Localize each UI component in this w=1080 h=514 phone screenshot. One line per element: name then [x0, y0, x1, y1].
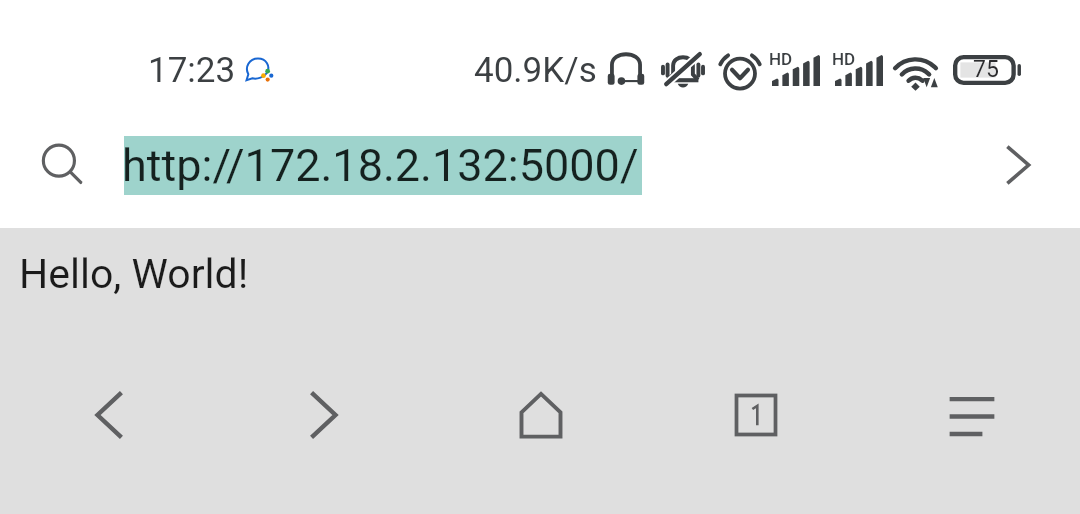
- button[interactable]: Menu: [864, 358, 1080, 472]
- button[interactable]: Home: [432, 358, 648, 472]
- staticText: 75: [973, 56, 999, 83]
- button[interactable]: Search: [40, 143, 82, 185]
- button[interactable]: Tabs: [648, 358, 864, 472]
- staticText: HD: [769, 49, 793, 69]
- button[interactable]: Back: [0, 358, 216, 472]
- button[interactable]: http://172.18.2.132:5000/: [124, 136, 642, 195]
- staticText: 40.9K/s: [474, 50, 597, 91]
- staticText: 17:23: [148, 50, 236, 91]
- staticText: HD: [832, 49, 856, 69]
- staticText: Hello, World!: [19, 250, 249, 298]
- staticText: http://172.18.2.132:5000/: [122, 139, 639, 192]
- button[interactable]: Forward: [216, 358, 432, 472]
- button[interactable]: Go: [1004, 143, 1032, 187]
